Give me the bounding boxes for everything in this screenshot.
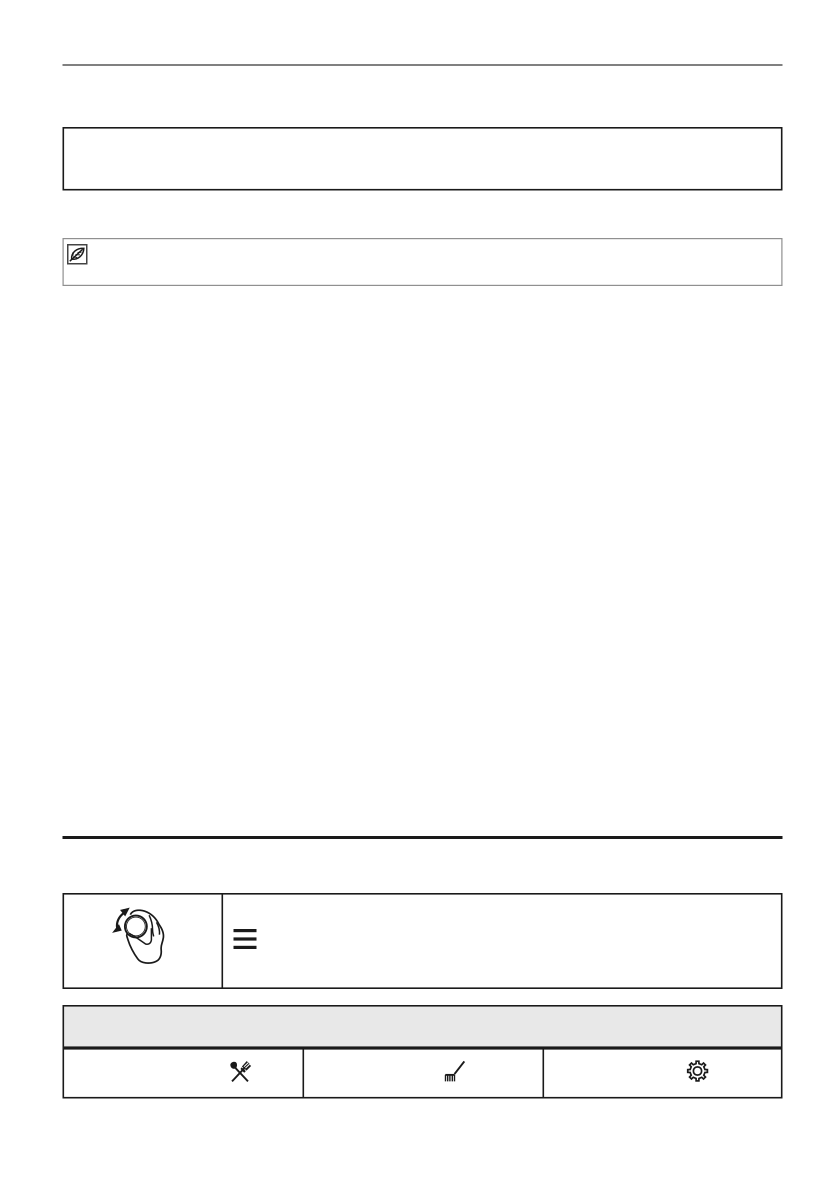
button[interactable]: Menu [221,893,782,989]
button[interactable]: Cleaning [302,1048,542,1098]
button[interactable]: Settings [542,1048,782,1098]
button[interactable]: Cooking programmes [62,1048,302,1098]
button[interactable]: Turn the selector knob [62,893,221,989]
